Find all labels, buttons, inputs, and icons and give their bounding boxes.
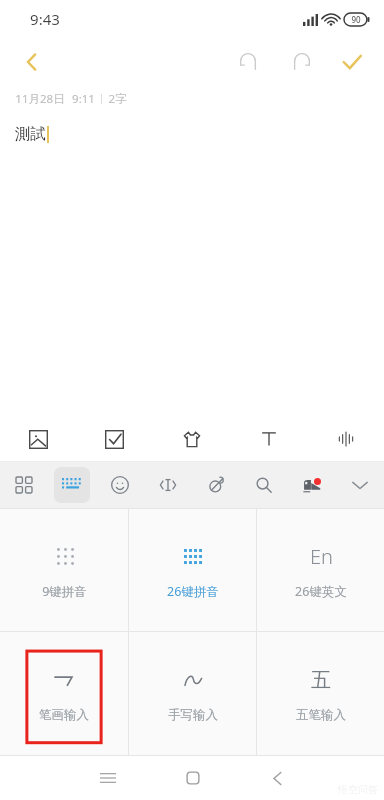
staticText: 9键拼音 [42, 583, 87, 600]
button[interactable]: Done [330, 40, 374, 84]
staticText: 手写输入 [168, 707, 218, 723]
staticText: 26键拼音 [167, 583, 219, 600]
button[interactable]: More, new [288, 462, 336, 508]
button[interactable]: Move cursor [144, 462, 192, 508]
button[interactable]: Redo [280, 40, 324, 84]
button[interactable]: Keyboard layouts [0, 462, 48, 508]
button[interactable]: Text format [230, 417, 307, 461]
button[interactable]: Hide keyboard [336, 462, 384, 508]
staticText: 11月28日 [15, 91, 65, 107]
staticText: 2字 [108, 91, 127, 107]
button[interactable]: 手写输入 [129, 632, 256, 755]
button[interactable]: Insert image [0, 417, 76, 461]
staticText: 悟空问答 [338, 783, 378, 796]
button[interactable]: Clipboard [192, 462, 240, 508]
button[interactable]: Voice [307, 417, 384, 461]
staticText: En [310, 543, 333, 570]
staticText: 五 [311, 668, 331, 693]
button[interactable]: Back [10, 40, 54, 84]
button[interactable]: Search [240, 462, 288, 508]
button[interactable]: 26键拼音 [129, 509, 256, 631]
button[interactable]: Undo [226, 40, 270, 84]
button[interactable]: Recents [65, 756, 150, 800]
staticText: 笔画输入 [39, 707, 89, 723]
staticText: 五笔输入 [296, 707, 346, 723]
button[interactable]: Back [235, 756, 320, 800]
staticText: 9:43 [30, 9, 60, 29]
button[interactable]: Emoji [96, 462, 144, 508]
staticText: 90 [351, 14, 361, 25]
button[interactable]: 9键拼音 [0, 509, 128, 631]
button[interactable]: Sticker [153, 417, 230, 461]
button[interactable]: Keyboard [48, 462, 96, 508]
staticText: 測試 [15, 124, 46, 144]
staticText: 9:11 [72, 91, 95, 107]
button[interactable]: 五 [257, 632, 384, 755]
button[interactable]: Home [150, 756, 235, 800]
staticText: 26键英文 [295, 583, 347, 600]
button[interactable]: 笔画输入 [0, 632, 128, 755]
button[interactable]: Checklist [76, 417, 153, 461]
button[interactable]: En [257, 509, 384, 631]
